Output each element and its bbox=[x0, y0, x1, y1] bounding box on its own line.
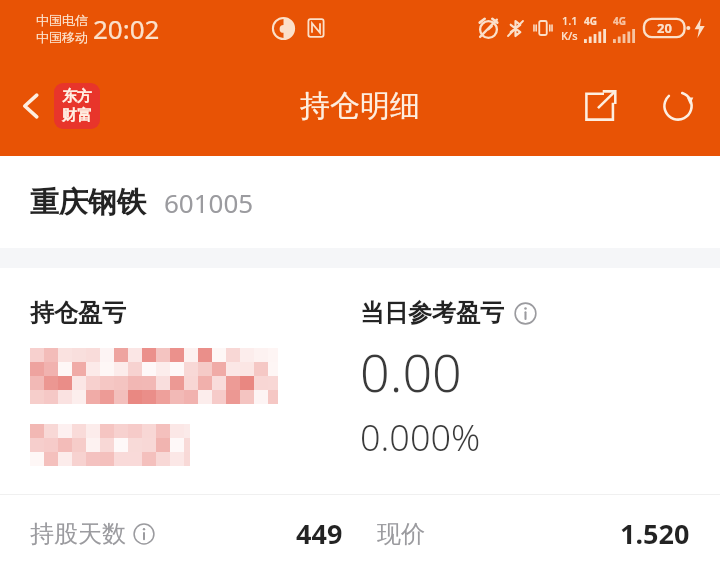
staticText: 0.00 bbox=[360, 336, 462, 407]
staticText: 4G bbox=[584, 14, 597, 28]
button[interactable]: Back bbox=[8, 83, 54, 129]
staticText: 1.520 bbox=[620, 515, 690, 552]
staticText: 中国电信 bbox=[36, 12, 88, 28]
staticText: 20 bbox=[657, 19, 672, 37]
staticText: 持仓盈亏 bbox=[30, 298, 126, 328]
button[interactable]: 东方财富 bbox=[54, 83, 100, 129]
button[interactable]: 重庆钢铁 bbox=[0, 156, 720, 248]
staticText: 20:02 bbox=[93, 11, 160, 46]
button[interactable]: 说明 bbox=[512, 300, 538, 326]
staticText: 1.1 bbox=[562, 13, 578, 28]
button[interactable]: Refresh bbox=[652, 80, 704, 132]
staticText: 现价 bbox=[377, 519, 425, 549]
staticText: 重庆钢铁 bbox=[30, 184, 146, 221]
button[interactable]: 持股天数 bbox=[30, 515, 343, 552]
staticText: 601005 bbox=[164, 185, 254, 220]
staticText: 持仓明细 bbox=[300, 87, 420, 125]
staticText: 持股天数 bbox=[30, 519, 126, 549]
staticText: 449 bbox=[296, 515, 343, 552]
staticText: 0.000% bbox=[360, 413, 481, 462]
staticText: K/s bbox=[561, 28, 578, 43]
button[interactable]: Share bbox=[574, 80, 626, 132]
button[interactable]: 现价 bbox=[377, 515, 690, 552]
staticText: 中国移动 bbox=[36, 29, 88, 45]
staticText: 东方 bbox=[62, 87, 92, 106]
staticText: 当日参考盈亏 bbox=[360, 298, 504, 328]
staticText: 财富 bbox=[62, 106, 92, 125]
staticText: 4G bbox=[613, 14, 626, 28]
